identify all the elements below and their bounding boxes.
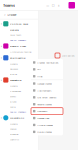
staticText: Pin [37,68,40,71]
staticText: Discover [7,13,16,17]
button[interactable]: General [0,27,38,32]
button[interactable]: Architecture Testing [0,49,38,54]
staticText: — [46,3,49,7]
button[interactable]: Account [68,2,75,8]
button[interactable]: Minimize [45,2,50,8]
staticText: Rename channel [37,103,52,106]
staticText: Teams [3,2,15,8]
staticText: Manage channel [37,82,52,85]
staticText: Delete channel [37,130,52,133]
button[interactable]: Manage channel [31,80,63,87]
staticText: Sales Team [10,33,21,37]
button[interactable]: Shared [0,126,38,131]
staticText: Shared [10,127,16,131]
button[interactable]: Builds [0,71,38,77]
button[interactable]: Logistics [0,137,38,142]
staticText: Get email address [37,96,56,99]
button[interactable]: ▸ [0,114,38,121]
button[interactable]: Archive channel [31,121,63,128]
staticText: Architecture Testing [10,50,31,54]
staticText: Planning [10,132,18,136]
button[interactable]: Get email address [31,94,63,101]
button[interactable]: Brand [0,99,38,104]
staticText: Channel notifications [37,61,58,64]
button[interactable]: General [0,121,38,126]
button[interactable]: General [0,83,38,88]
button[interactable]: Releases [0,66,38,71]
staticText: Social [10,105,16,108]
staticText: □ [52,3,55,7]
button[interactable]: ▸ [0,77,38,83]
button[interactable]: Add members [31,87,63,94]
staticText: Brand [10,100,16,103]
button[interactable]: Workflows [31,108,63,115]
staticText: See all channels [10,38,26,42]
button[interactable]: Sales Team [0,32,38,37]
staticText: General [10,122,18,125]
staticText: Logistics [10,138,19,141]
staticText: Operations [10,116,24,119]
button[interactable]: Pin [31,66,63,73]
button[interactable]: New [56,2,61,8]
staticText: More options [61,54,74,57]
button[interactable]: Rename channel [31,101,63,108]
staticText: General [10,28,19,31]
button[interactable]: Delete channel [31,128,63,135]
staticText: Archive channel [37,123,53,127]
staticText: Campaigns [10,89,21,93]
button[interactable]: Social [0,104,38,109]
button[interactable]: Campaigns [0,88,38,94]
staticText: ▸ [1,23,2,25]
staticText: ▸ [1,117,2,119]
button[interactable]: ⌕ [0,11,38,19]
staticText: ▸ [1,79,2,81]
button[interactable]: ▸ [0,20,38,27]
button[interactable]: Planning [0,131,38,137]
button[interactable]: Manage tags [31,115,63,121]
staticText: + [58,3,60,8]
button[interactable]: Channel notifications [31,59,63,66]
button[interactable]: ▸ [0,43,38,49]
button[interactable]: General [0,61,38,66]
button[interactable]: See all channels [0,109,38,114]
staticText: ▸ [1,45,2,47]
button[interactable]: See all channels [0,37,38,43]
staticText: Builds [10,72,17,76]
button[interactable]: Restore [50,2,56,8]
staticText: See all channels [10,110,26,114]
staticText: Manage tags [37,116,49,120]
staticText: Workflows [37,109,47,113]
staticText: Events [10,95,16,98]
button[interactable]: Events [0,94,38,99]
staticText: Add members [37,89,51,92]
staticText: ▸ [1,57,2,59]
staticText: Design Crew [10,44,26,48]
staticText: Marketing [10,78,22,82]
staticText: Hide [37,75,42,78]
staticText: Contoso Sales [10,22,28,25]
staticText: ⌕ [4,13,6,16]
staticText: Releases [10,67,18,71]
button[interactable]: ▸ [0,54,38,61]
staticText: General [10,62,18,65]
staticText: General [10,84,18,88]
staticText: Engineering [10,56,26,59]
button[interactable]: Hide [31,73,63,80]
